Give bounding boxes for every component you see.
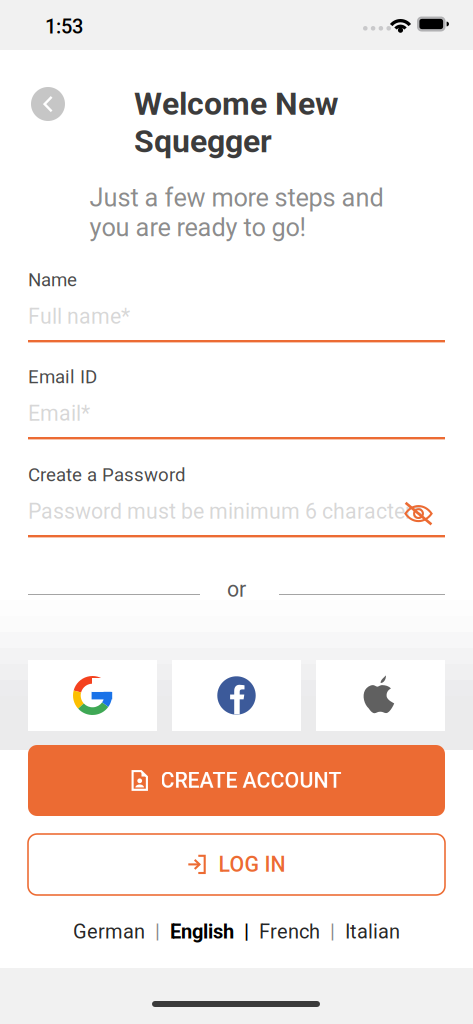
staticText: English bbox=[170, 920, 234, 943]
staticText: Password must be minimum 6 characters bbox=[28, 499, 423, 524]
button[interactable]: Continue with social account bbox=[172, 660, 301, 731]
staticText: | bbox=[145, 920, 170, 943]
staticText: Email ID bbox=[28, 366, 97, 388]
staticText: | bbox=[320, 920, 345, 943]
button[interactable]: Italian bbox=[345, 920, 400, 943]
button[interactable]: French bbox=[259, 920, 320, 943]
staticText: Full name* bbox=[28, 304, 130, 329]
button[interactable]: LOG IN bbox=[28, 834, 445, 895]
staticText: LOG IN bbox=[218, 852, 285, 877]
staticText: Create a Password bbox=[28, 464, 186, 486]
button[interactable]: Continue with social account bbox=[316, 660, 445, 731]
button[interactable]: CREATE ACCOUNT bbox=[28, 745, 445, 816]
staticText: French bbox=[259, 920, 320, 943]
staticText: CREATE ACCOUNT bbox=[160, 768, 341, 793]
staticText: German bbox=[73, 920, 145, 943]
button[interactable]: English bbox=[170, 920, 234, 943]
staticText: or bbox=[227, 577, 246, 602]
staticText: Email* bbox=[28, 401, 90, 426]
button[interactable]: German bbox=[73, 920, 145, 943]
staticText: Italian bbox=[345, 920, 400, 943]
staticText: Just a few more steps and you are ready … bbox=[89, 183, 383, 242]
button[interactable]: Continue with social account bbox=[28, 660, 157, 731]
staticText: Welcome New Squegger bbox=[134, 85, 339, 160]
staticText: 1:53 bbox=[45, 15, 83, 38]
staticText: | bbox=[234, 920, 259, 943]
button[interactable]: Show password bbox=[400, 498, 437, 530]
staticText: Name bbox=[28, 269, 77, 291]
button[interactable]: Back bbox=[24, 80, 72, 128]
